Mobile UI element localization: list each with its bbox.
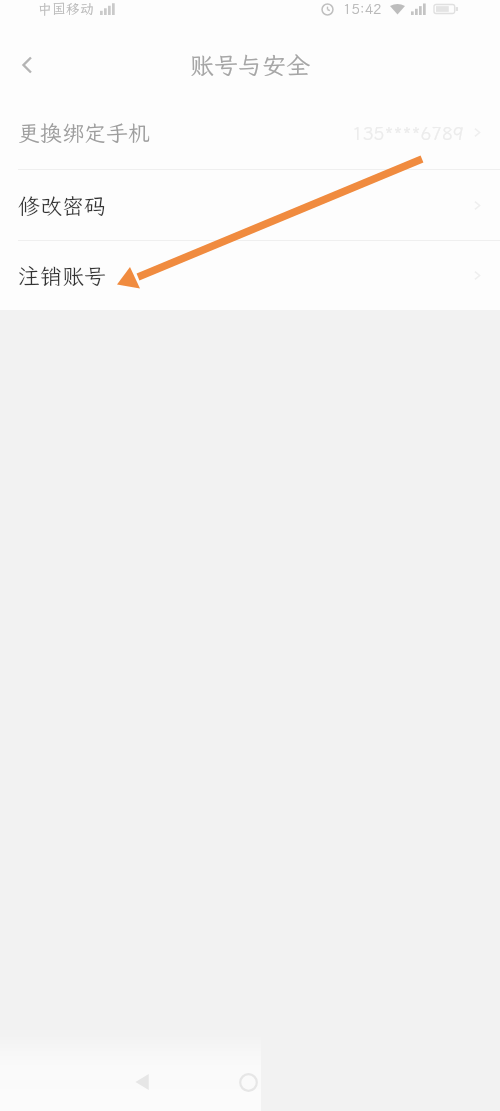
button[interactable]: 注销账号 (0, 241, 500, 310)
staticText: 135****6789 (352, 121, 464, 145)
button[interactable]: Back (123, 1062, 163, 1102)
staticText: 注销账号 (18, 261, 107, 290)
staticText: 中国移动 (38, 0, 94, 18)
button[interactable]: 更换绑定手机 (0, 96, 500, 169)
staticText: 更换绑定手机 (18, 118, 151, 147)
staticText: 账号与安全 (190, 49, 310, 81)
staticText: 修改密码 (18, 191, 107, 220)
button[interactable]: Back (4, 42, 50, 88)
button[interactable]: 修改密码 (0, 170, 500, 240)
button[interactable]: Home (228, 1062, 268, 1102)
staticText: 15:42 (343, 0, 382, 18)
